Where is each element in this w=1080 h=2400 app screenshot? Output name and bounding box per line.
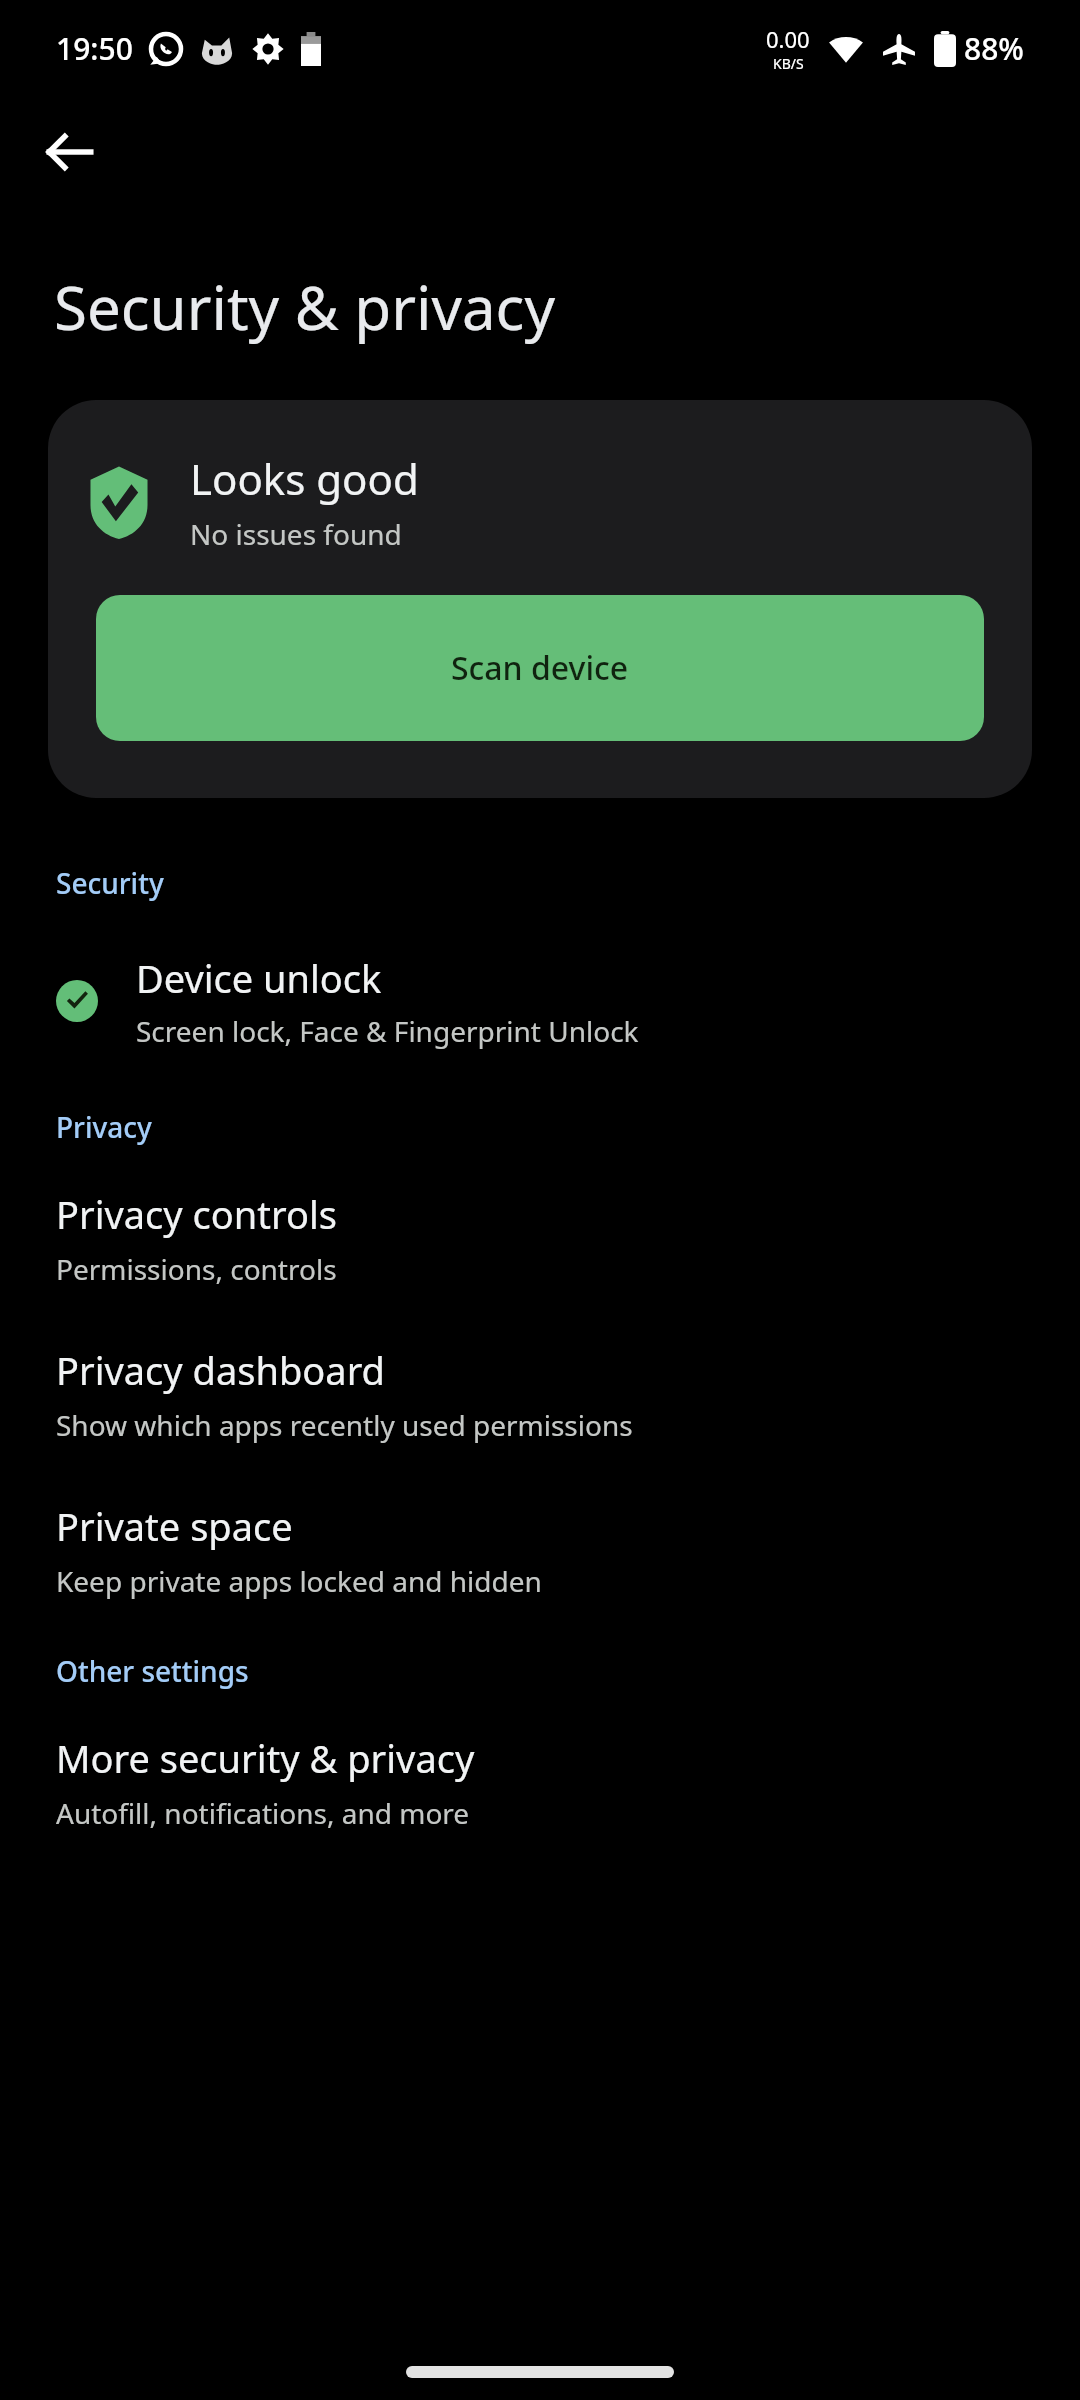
staticText: Autofill, notifications, and more <box>56 1794 470 1832</box>
button[interactable]: Looks good <box>48 400 1032 798</box>
button[interactable]: Scan device <box>96 595 984 741</box>
staticText: Scan device <box>451 646 629 690</box>
staticText: KB/S <box>773 54 804 73</box>
staticText: Security & privacy <box>54 266 555 348</box>
staticText: No issues found <box>190 515 402 553</box>
staticText: Device unlock <box>136 952 382 1004</box>
button[interactable]: Privacy controls <box>0 1174 1080 1302</box>
staticText: Private space <box>56 1500 293 1552</box>
staticText: Permissions, controls <box>56 1250 337 1288</box>
staticText: Privacy controls <box>56 1188 337 1240</box>
staticText: Keep private apps locked and hidden <box>56 1562 542 1600</box>
button[interactable]: Back <box>26 108 114 196</box>
staticText: Screen lock, Face & Fingerprint Unlock <box>136 1012 639 1050</box>
staticText: 0.00 <box>766 24 810 54</box>
button[interactable]: Device unlock <box>0 936 1080 1066</box>
button[interactable]: Private space <box>0 1486 1080 1614</box>
staticText: 88% <box>964 28 1024 69</box>
staticText: 19:50 <box>56 28 133 69</box>
staticText: More security & privacy <box>56 1732 475 1784</box>
staticText: Security <box>56 864 164 902</box>
staticText: Other settings <box>56 1652 249 1690</box>
button[interactable]: Privacy dashboard <box>0 1330 1080 1458</box>
staticText: Looks good <box>190 450 419 507</box>
staticText: Privacy <box>56 1108 152 1146</box>
staticText: Show which apps recently used permission… <box>56 1406 633 1444</box>
staticText: Privacy dashboard <box>56 1344 385 1396</box>
button[interactable]: More security & privacy <box>0 1718 1080 1846</box>
